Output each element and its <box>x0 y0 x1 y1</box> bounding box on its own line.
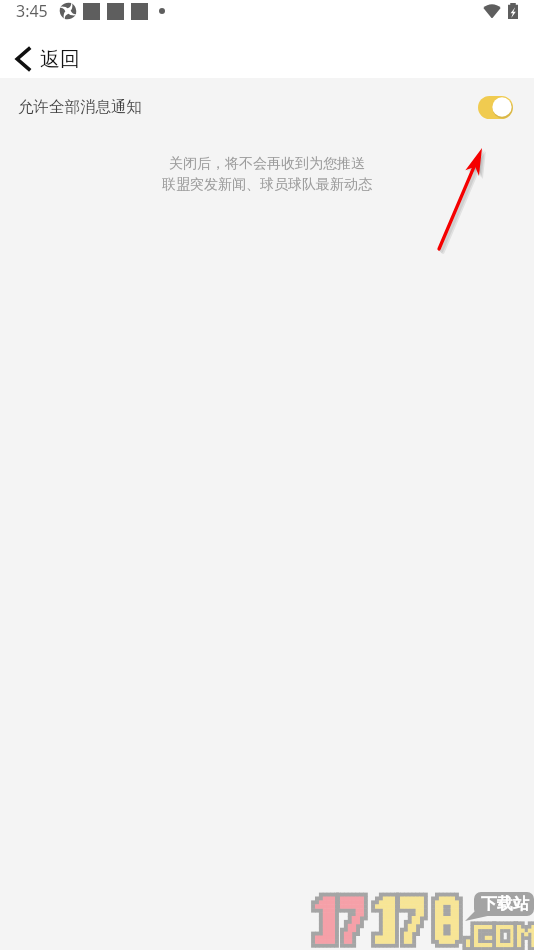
button[interactable]: Back <box>0 30 534 78</box>
other: Back <box>16 47 31 71</box>
staticText: 关闭后，将不会再收到为您推送 联盟突发新闻、球员球队最新动态 <box>0 155 534 193</box>
staticText: 允许全部消息通知 <box>18 97 142 117</box>
staticText: 3:45 <box>16 0 48 22</box>
staticText: 下载站 <box>481 894 529 914</box>
staticText: 返回 <box>40 47 80 72</box>
button[interactable]: Allow all notifications toggle <box>478 95 514 119</box>
button[interactable]: 允许全部消息通知 <box>0 78 534 136</box>
